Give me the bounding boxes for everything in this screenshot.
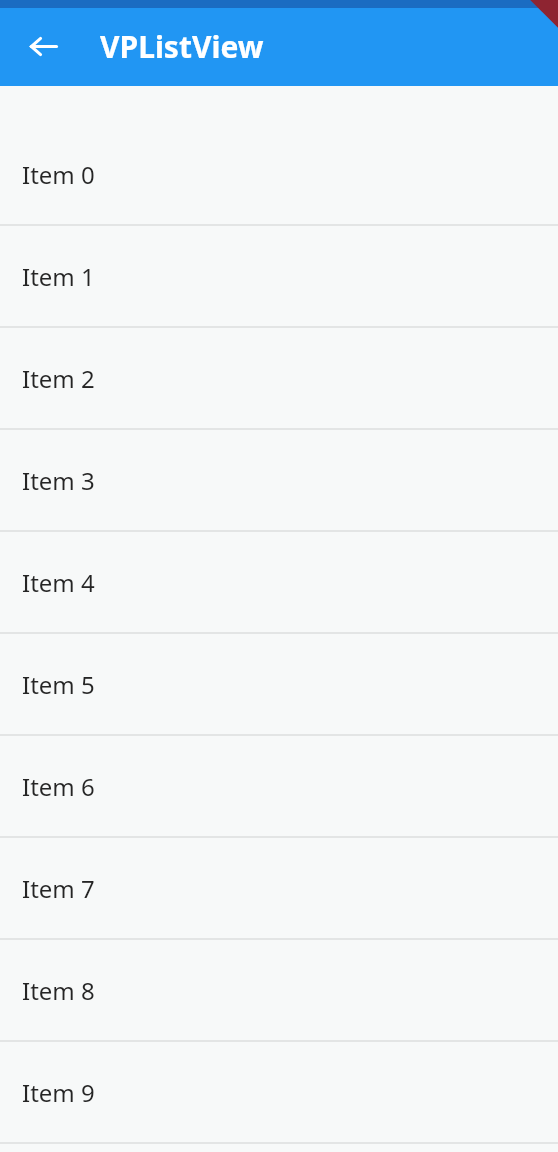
button[interactable]: Item 7 [0, 838, 558, 938]
staticText: Item 7 [22, 872, 95, 905]
staticText: Item 8 [22, 974, 95, 1007]
staticText: Item 0 [22, 158, 95, 191]
button[interactable]: Item 2 [0, 328, 558, 428]
staticText: Item 5 [22, 668, 95, 701]
staticText: Item 1 [22, 260, 95, 293]
button[interactable]: Item 8 [0, 940, 558, 1040]
staticText: Item 4 [22, 566, 95, 599]
button[interactable]: Item 3 [0, 430, 558, 530]
button[interactable]: Item 5 [0, 634, 558, 734]
staticText: Item 9 [22, 1076, 95, 1109]
button[interactable]: Back [19, 22, 67, 70]
button[interactable]: Item 4 [0, 532, 558, 632]
staticText: Item 3 [22, 464, 95, 497]
button[interactable]: Item 6 [0, 736, 558, 836]
staticText: Item 2 [22, 362, 95, 395]
button[interactable]: VPListView [100, 26, 264, 67]
button[interactable]: Item 9 [0, 1042, 558, 1142]
button[interactable]: Item 1 [0, 226, 558, 326]
button[interactable]: Item 0 [0, 124, 558, 224]
staticText: Item 6 [22, 770, 95, 803]
